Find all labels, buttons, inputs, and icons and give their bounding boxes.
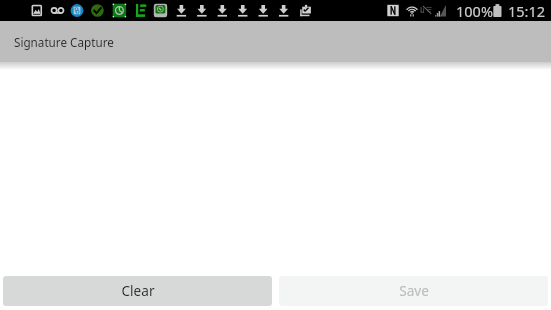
staticText: 100% — [456, 1, 493, 21]
staticText: 15:12 — [508, 1, 546, 21]
button[interactable]: Clear — [3, 276, 272, 306]
staticText: Save — [399, 281, 429, 300]
button[interactable]: Save — [279, 276, 548, 306]
staticText: Signature Capture — [14, 34, 114, 50]
staticText: Clear — [121, 281, 155, 300]
